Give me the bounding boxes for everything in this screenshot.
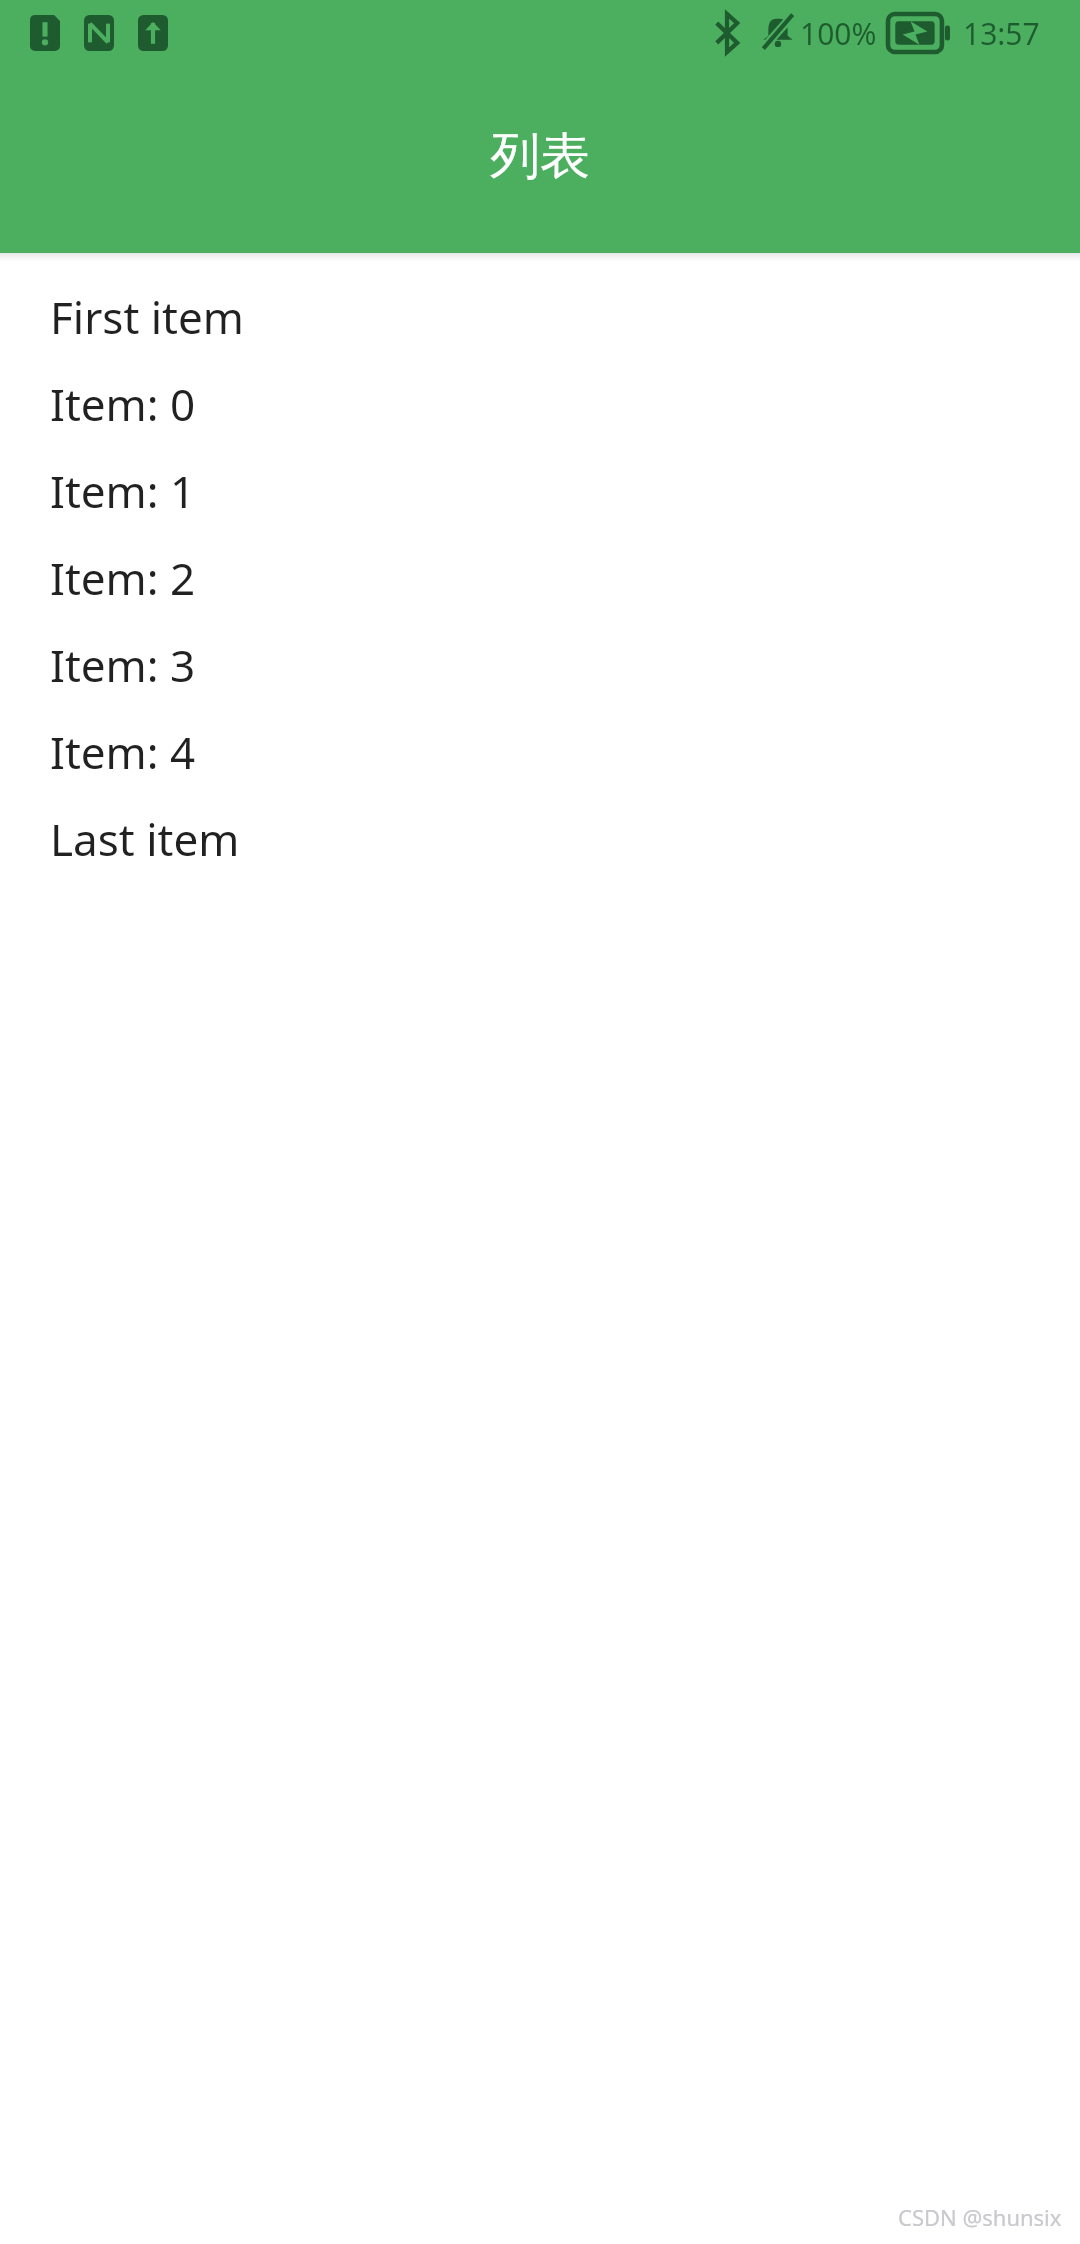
button[interactable]: Item: 3 <box>0 621 1080 708</box>
staticText: Item: 3 <box>50 635 196 695</box>
button[interactable]: Item: 0 <box>0 360 1080 447</box>
staticText: 列表 <box>490 125 590 188</box>
staticText: Item: 2 <box>50 548 196 608</box>
button[interactable]: Item: 2 <box>0 534 1080 621</box>
staticText: 100% <box>800 13 877 54</box>
staticText: CSDN @shunsix <box>898 2202 1062 2232</box>
button[interactable]: Last item <box>0 795 1080 882</box>
button[interactable]: First item <box>0 273 1080 360</box>
staticText: First item <box>50 287 244 347</box>
staticText: Last item <box>50 809 240 869</box>
staticText: Item: 4 <box>50 722 196 782</box>
staticText: Item: 1 <box>50 461 196 521</box>
staticText: 13:57 <box>963 13 1040 54</box>
button[interactable]: Item: 4 <box>0 708 1080 795</box>
staticText: Item: 0 <box>50 374 196 434</box>
button[interactable]: Item: 1 <box>0 447 1080 534</box>
